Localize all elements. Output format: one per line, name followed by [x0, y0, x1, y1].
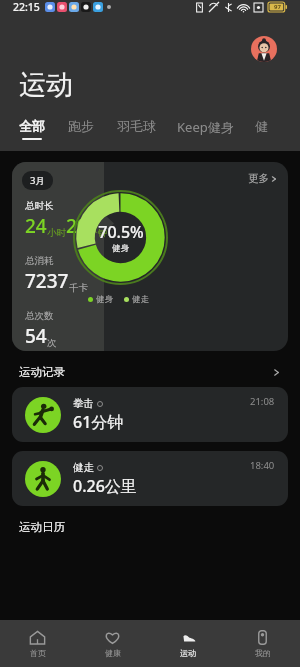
button[interactable]: 更多 [248, 172, 278, 185]
staticText: 首页 [30, 648, 46, 658]
staticText: 羽毛球 [117, 118, 156, 134]
staticText: 24 [25, 213, 47, 239]
button[interactable]: 健走 [12, 451, 288, 506]
staticText: 18:40 [250, 459, 275, 472]
staticText: 次 [47, 337, 57, 349]
button[interactable]: 拳击 [12, 387, 288, 442]
staticText: 分钟 [88, 227, 107, 239]
staticText: 小时 [47, 227, 66, 239]
staticText: 54 [25, 323, 47, 349]
button[interactable]: 运动记录 [19, 365, 281, 379]
button[interactable]: 跑步 [68, 118, 94, 140]
staticText: 运动 [180, 648, 196, 658]
button[interactable]: 健 [255, 118, 268, 140]
button[interactable]: Keep健身 [177, 118, 234, 142]
staticText: 健身 [96, 294, 113, 305]
staticText: 更多 [248, 172, 269, 185]
staticText: 20 [66, 213, 88, 239]
button[interactable]: 3月 [12, 162, 288, 351]
staticText: 健身 [112, 243, 129, 254]
staticText: 运动 [19, 68, 73, 102]
button[interactable]: 首页 [0, 620, 75, 667]
staticText: 拳击 [73, 397, 94, 410]
staticText: 3月 [30, 174, 45, 187]
staticText: 健 [255, 118, 268, 134]
staticText: 健走 [132, 294, 149, 305]
staticText: 21:08 [250, 395, 275, 408]
staticText: 我的 [255, 648, 271, 658]
staticText: 千卡 [69, 282, 88, 294]
button[interactable]: Profile [251, 36, 277, 62]
staticText: 总时长 [25, 200, 54, 212]
staticText: 运动日历 [19, 520, 65, 534]
button[interactable]: 我的 [225, 620, 300, 667]
staticText: 70.5% [98, 221, 144, 243]
staticText: 0.26公里 [73, 475, 137, 497]
button[interactable]: 羽毛球 [117, 118, 156, 140]
button[interactable]: 全部 [19, 118, 45, 140]
button[interactable]: 3月 [30, 174, 45, 187]
button[interactable]: 运动 [150, 620, 225, 667]
staticText: 总消耗 [25, 255, 54, 267]
staticText: 总次数 [25, 310, 54, 322]
staticText: 7237 [25, 268, 69, 294]
staticText: 22:15 [13, 0, 40, 14]
staticText: 97 [274, 3, 281, 11]
staticText: 全部 [19, 118, 45, 134]
staticText: 61分钟 [73, 411, 124, 433]
staticText: 运动记录 [19, 365, 65, 379]
staticText: 跑步 [68, 118, 94, 134]
staticText: 健走 [73, 461, 94, 474]
button[interactable]: 健康 [75, 620, 150, 667]
staticText: 健康 [105, 648, 121, 658]
staticText: Keep健身 [177, 118, 234, 136]
other: More [272, 368, 281, 377]
